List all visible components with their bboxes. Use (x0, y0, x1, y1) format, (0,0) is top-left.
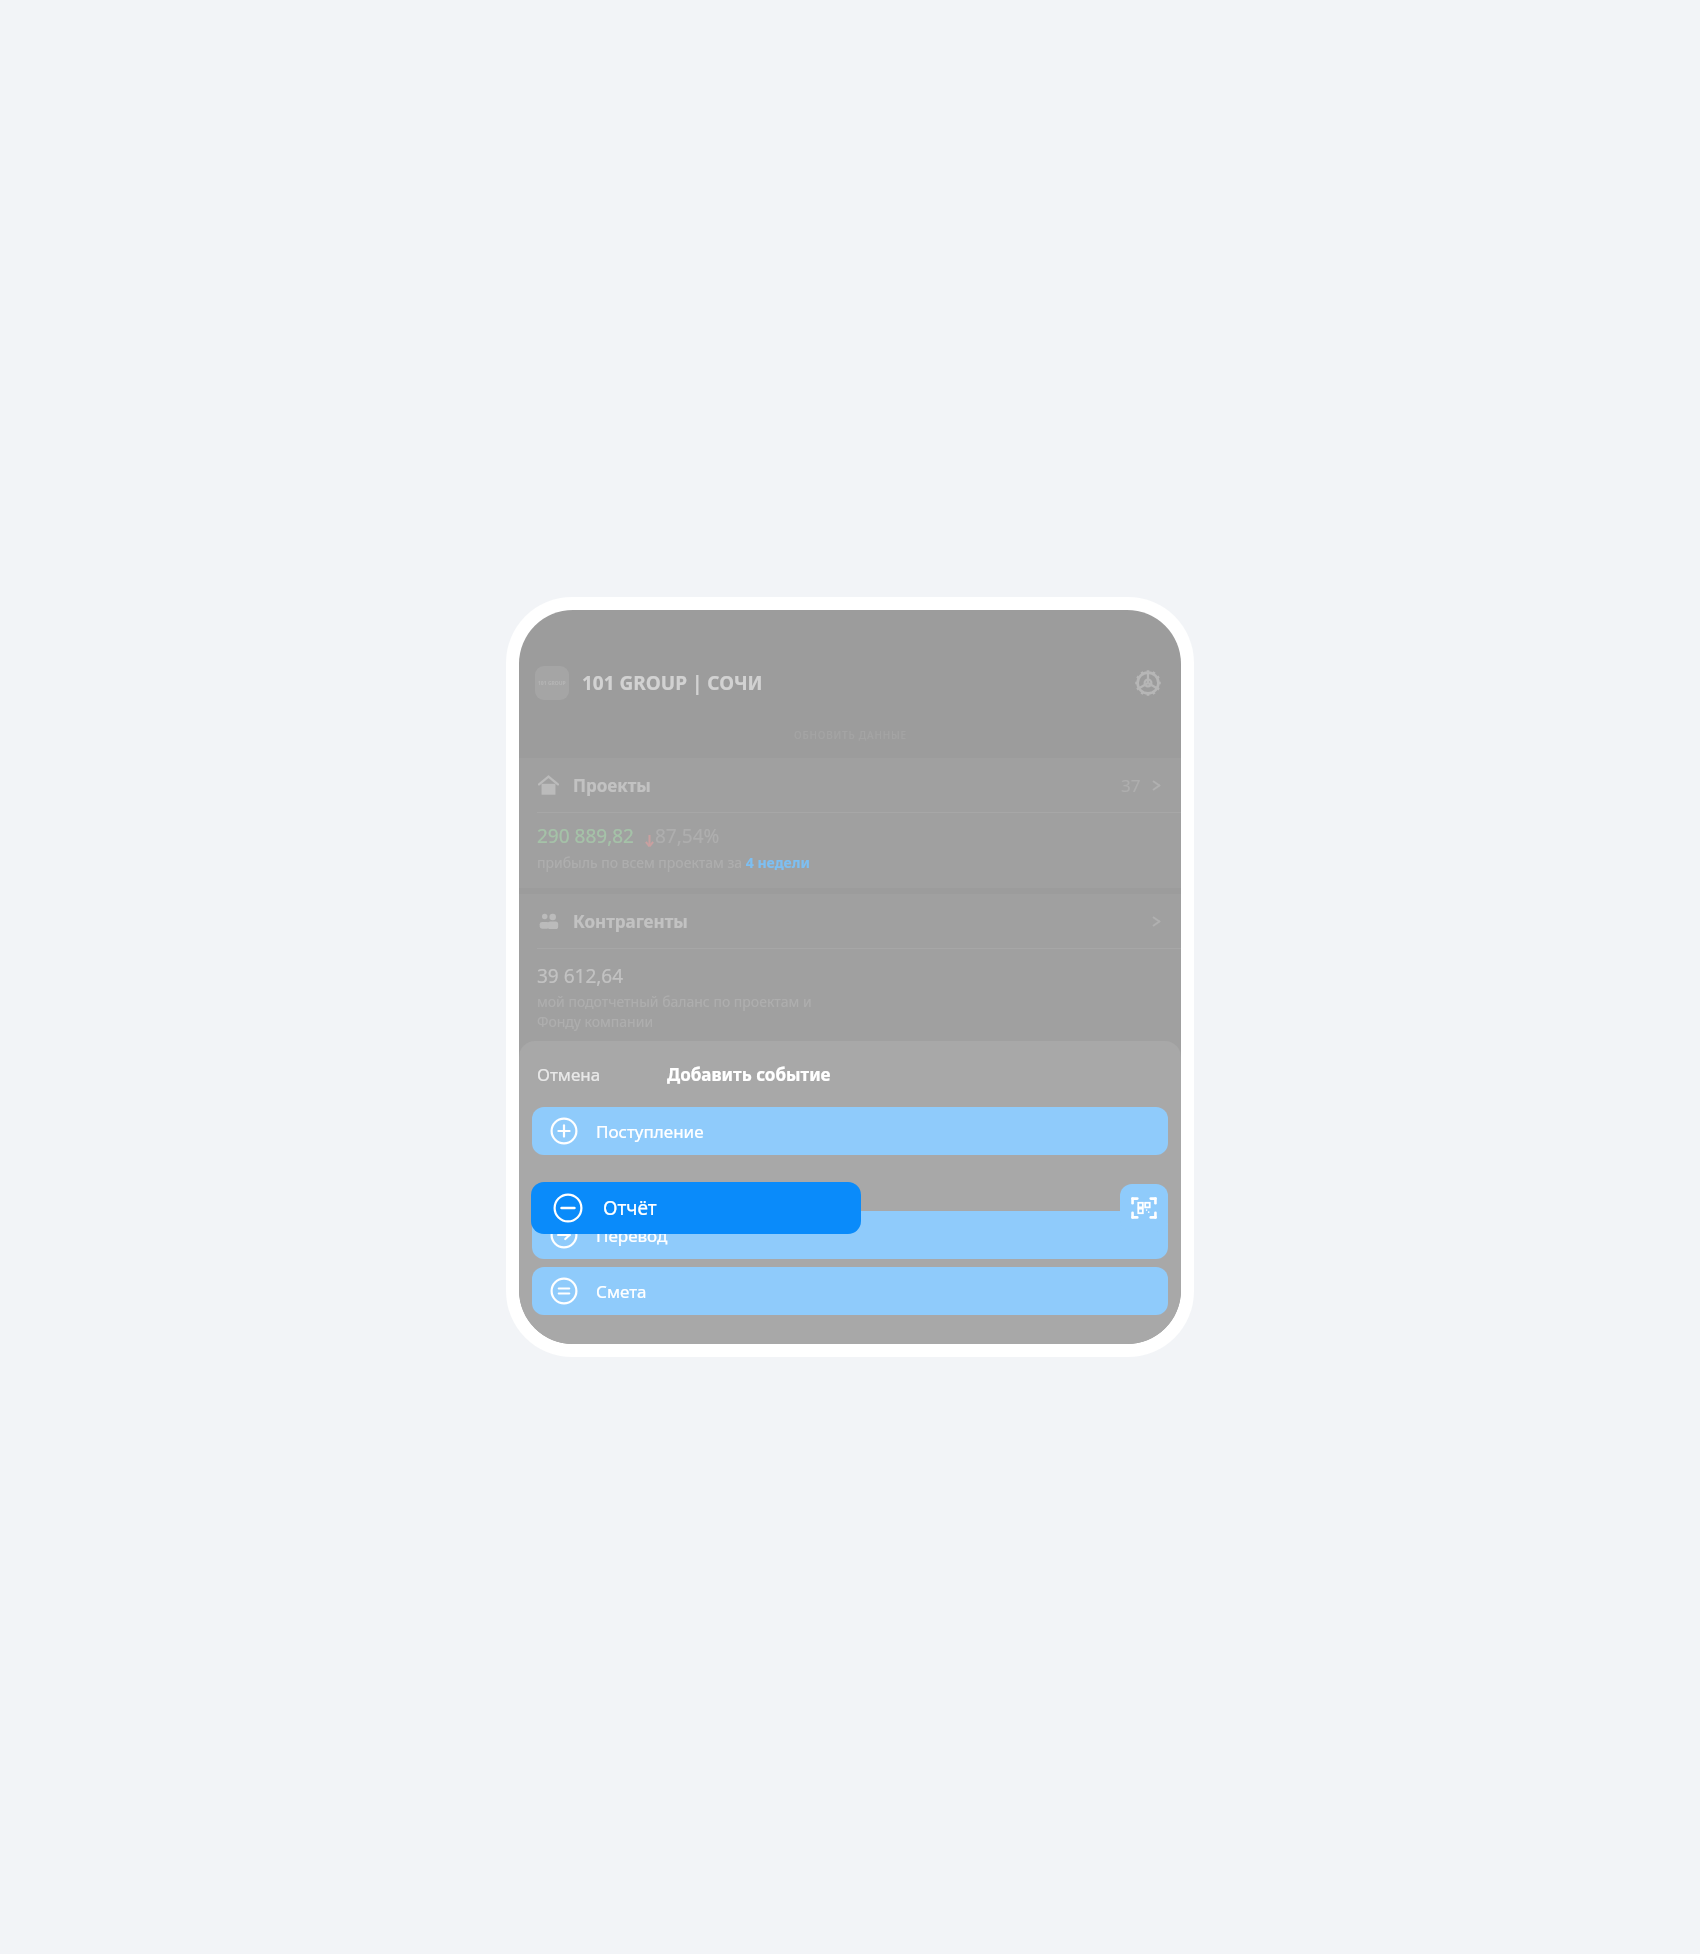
staticText: Контрагенты (573, 910, 688, 933)
button[interactable]: Отмена (533, 1057, 605, 1092)
staticText: 290 889,82 (537, 823, 634, 849)
staticText: Прайс-листы (573, 1195, 687, 1218)
staticText: 101 GROUP (538, 680, 566, 687)
staticText: мой подотчетный баланс по проектам и Фон… (537, 992, 812, 1032)
staticText: Проекты (573, 774, 651, 797)
staticText: 87,54% (655, 823, 720, 849)
staticText: Добавить событие (667, 1063, 831, 1086)
staticText: Смета (596, 1280, 647, 1303)
staticText: Перевод (596, 1224, 668, 1247)
staticText: 0 (537, 1054, 547, 1077)
button[interactable]: История событий (537, 1124, 1163, 1178)
staticText: Поступление (596, 1120, 704, 1143)
button[interactable]: Смета (532, 1267, 1168, 1315)
button[interactable]: Проекты (537, 758, 1163, 812)
button[interactable]: Поступление (532, 1107, 1168, 1155)
staticText: 37 (1121, 774, 1141, 797)
button[interactable]: 101 GROUP (535, 648, 1165, 718)
staticText: 101 GROUP | СОЧИ (582, 670, 763, 696)
staticText: 20 418 (1087, 1140, 1141, 1163)
button[interactable]: Настройки (1131, 666, 1165, 700)
staticText: Отчёт (603, 1195, 657, 1221)
staticText: История событий (573, 1140, 728, 1163)
staticText: прибыль по всем проектам за 4 недели (537, 853, 810, 872)
staticText: 39 612,64 (537, 963, 624, 989)
button[interactable]: Сканировать QR-код (1120, 1184, 1168, 1232)
button[interactable]: Прайс-листы (537, 1179, 1163, 1233)
button[interactable]: Перевод (532, 1211, 1168, 1259)
staticText: 4 (1065, 1144, 1072, 1159)
staticText: Отмена (537, 1063, 601, 1086)
button[interactable]: Отчёт (531, 1182, 861, 1234)
button[interactable]: Контрагенты (537, 894, 1163, 948)
